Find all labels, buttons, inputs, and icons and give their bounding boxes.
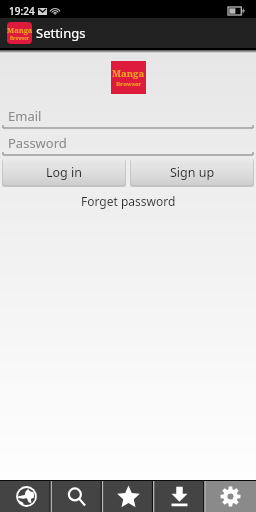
staticText: Password [8,134,67,152]
staticText: Manga [7,25,32,35]
staticText: Manga [112,67,145,80]
button[interactable]: Forget password [0,193,256,209]
button[interactable]: Password [0,134,256,158]
button[interactable]: Favorites [103,480,154,512]
button[interactable]: Browse [0,480,52,512]
button[interactable]: Search [52,480,103,512]
staticText: Settings [36,24,86,42]
button[interactable]: Settings [205,480,256,512]
staticText: Email [8,107,42,125]
staticText: 19:24 [9,4,35,18]
staticText: Browser [10,35,30,41]
staticText: Log in [46,164,83,181]
staticText: Forget password [81,193,176,209]
button[interactable]: Downloads [154,480,205,512]
staticText: Sign up [170,164,215,181]
staticText: Browser [116,80,142,88]
button[interactable]: Email [0,107,256,131]
button[interactable]: Sign up [130,158,254,187]
button[interactable]: Log in [2,158,126,187]
